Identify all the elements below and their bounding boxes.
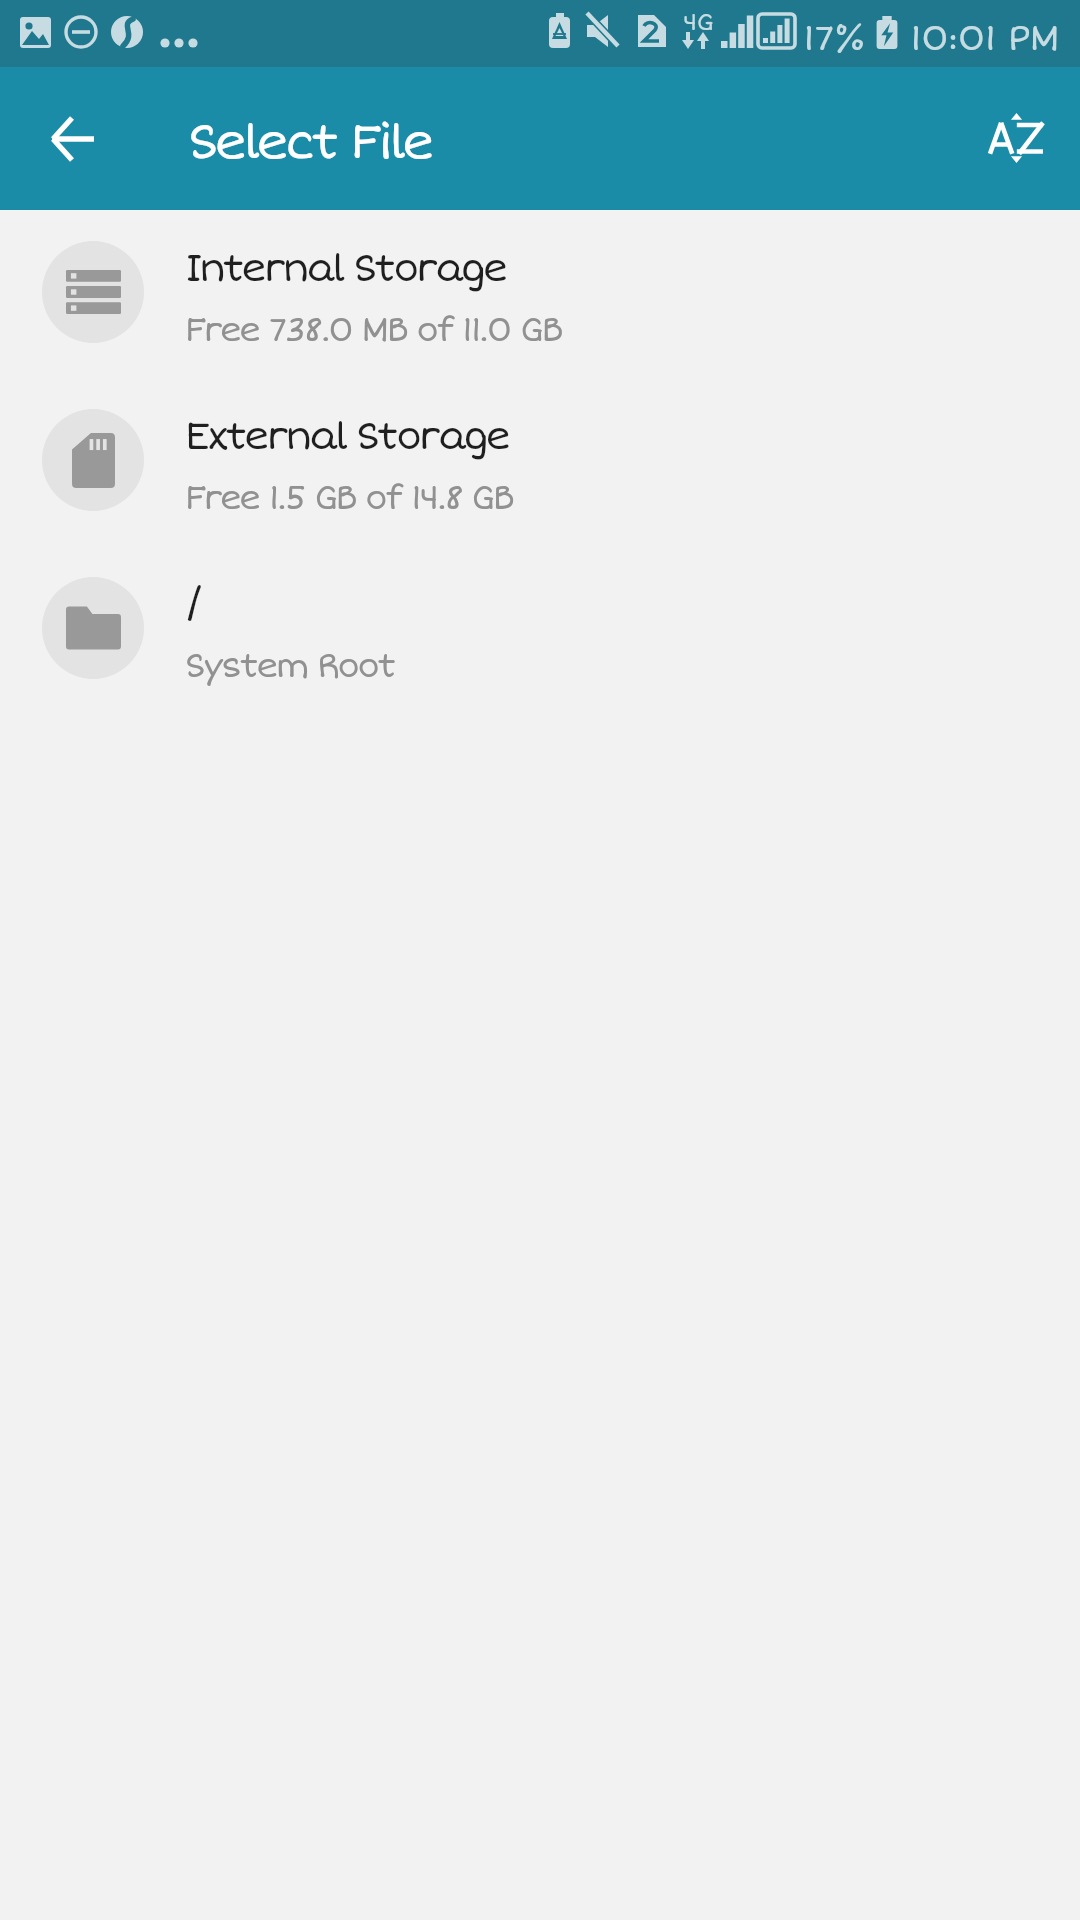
staticText: System Root: [185, 646, 395, 687]
button[interactable]: /: [0, 546, 1080, 714]
staticText: 4G: [683, 8, 713, 38]
staticText: Free 1.5 GB of 14.8 GB: [185, 478, 513, 519]
button[interactable]: External Storage: [0, 378, 1080, 546]
button[interactable]: Navigate up: [26, 91, 122, 187]
button[interactable]: Sort order: [964, 86, 1068, 190]
staticText: Select File: [188, 112, 432, 172]
staticText: Free 738.0 MB of 11.0 GB: [185, 310, 562, 351]
staticText: External Storage: [185, 414, 509, 461]
staticText: Internal Storage: [185, 246, 506, 293]
staticText: /: [185, 582, 200, 629]
staticText: 10:01 PM: [910, 16, 1059, 60]
staticText: 17%: [803, 16, 866, 60]
button[interactable]: Internal Storage: [0, 210, 1080, 378]
